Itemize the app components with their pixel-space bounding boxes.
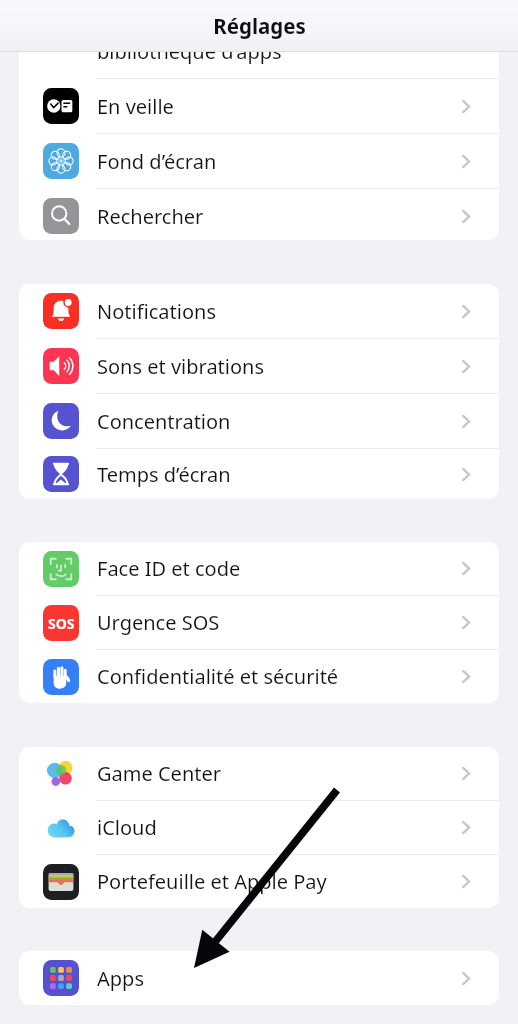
other: Ouvrir <box>460 96 473 117</box>
other: Ouvrir <box>460 411 473 432</box>
button[interactable]: Fond d’écran <box>19 134 499 188</box>
button[interactable]: Concentration <box>19 394 499 448</box>
staticText: Réglages <box>213 12 306 40</box>
staticText: Concentration <box>97 408 231 435</box>
button[interactable]: Face ID et code <box>19 542 499 595</box>
staticText: Game Center <box>97 760 221 787</box>
other: Ouvrir <box>460 301 473 322</box>
button[interactable]: iCloud <box>19 801 499 854</box>
button[interactable]: Portefeuille et Apple Pay <box>19 855 499 908</box>
other: Ouvrir <box>460 763 473 784</box>
other: Ouvrir <box>460 356 473 377</box>
button[interactable]: Sons et vibrations <box>19 339 499 393</box>
staticText: Notifications <box>97 298 216 325</box>
other: Ouvrir <box>460 817 473 838</box>
button[interactable]: En veille <box>19 79 499 133</box>
staticText: Fond d’écran <box>97 148 217 175</box>
staticText: iCloud <box>97 814 157 841</box>
staticText: Temps d’écran <box>97 461 231 488</box>
button[interactable]: Notifications <box>19 284 499 338</box>
other: Ouvrir <box>460 968 473 989</box>
staticText: Apps <box>97 965 144 992</box>
staticText: Rechercher <box>97 203 204 230</box>
other: Ouvrir <box>460 558 473 579</box>
staticText: Portefeuille et Apple Pay <box>97 868 327 895</box>
other: Ouvrir <box>460 871 473 892</box>
other: Ouvrir <box>460 612 473 633</box>
button[interactable]: SOS <box>19 596 499 649</box>
button[interactable]: Game Center <box>19 747 499 800</box>
button[interactable]: Confidentialité et sécurité <box>19 650 499 703</box>
staticText: Confidentialité et sécurité <box>97 663 339 690</box>
staticText: En veille <box>97 93 174 120</box>
button[interactable]: Rechercher <box>19 189 499 240</box>
staticText: Face ID et code <box>97 555 241 582</box>
other: Ouvrir <box>460 206 473 227</box>
staticText: SOS <box>48 614 75 633</box>
staticText: Écran d’accueil et bibliothèque d’apps <box>97 12 282 65</box>
button[interactable]: Temps d’écran <box>19 449 499 499</box>
other: Ouvrir <box>460 464 473 485</box>
staticText: Sons et vibrations <box>97 353 265 380</box>
other: Ouvrir <box>460 151 473 172</box>
other: Ouvrir <box>460 666 473 687</box>
staticText: Urgence SOS <box>97 609 220 636</box>
button[interactable]: Apps <box>19 951 499 1005</box>
button[interactable]: Écran d’accueil et bibliothèque d’apps <box>19 0 499 78</box>
